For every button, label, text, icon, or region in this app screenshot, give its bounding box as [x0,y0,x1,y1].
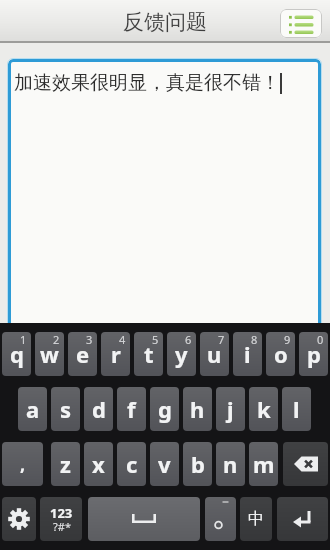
button[interactable]: r [101,332,130,376]
button[interactable]: p [299,332,328,376]
button[interactable]: z [51,442,80,486]
staticText: h [190,394,205,424]
staticText: ?#* [53,519,71,534]
staticText: 中 [248,509,264,529]
staticText: 3 [86,332,93,347]
staticText: e [76,339,90,369]
staticText: d [92,394,106,424]
button[interactable]: k [249,387,278,431]
button[interactable]: 123 [40,497,82,541]
button[interactable] [280,9,322,38]
staticText: c [126,449,138,479]
staticText: l [293,394,300,424]
staticText: 反馈问题 [123,9,207,35]
button[interactable]: b [183,442,212,486]
staticText: u [207,339,222,369]
staticText: 加速效果很明显，真是很不错！ [14,71,280,95]
button[interactable]: e [68,332,97,376]
staticText: v [158,449,171,479]
staticText: f [127,394,136,424]
staticText: j [227,394,234,424]
staticText: 1 [20,332,27,347]
button[interactable] [205,497,236,541]
staticText: g [158,394,172,424]
staticText: k [257,394,271,424]
button[interactable]: d [84,387,113,431]
staticText: w [40,339,59,369]
staticText: 0 [317,332,324,347]
staticText: 9 [284,332,291,347]
button[interactable]: 中 [240,497,272,541]
staticText: 123 [50,504,73,522]
staticText: r [111,339,121,369]
button[interactable]: w [35,332,64,376]
button[interactable]: h [183,387,212,431]
button[interactable]: q [2,332,31,376]
staticText: a [26,394,40,424]
button[interactable]: x [84,442,113,486]
button[interactable]: c [117,442,146,486]
staticText: y [175,339,188,369]
staticText: o [274,339,288,369]
staticText: 5 [152,332,159,347]
button[interactable]: i [233,332,262,376]
staticText: 2 [53,332,60,347]
button[interactable]: f [117,387,146,431]
button[interactable]: t [134,332,163,376]
button[interactable] [283,442,328,486]
staticText: 7 [218,332,225,347]
button[interactable]: , [2,442,43,486]
staticText: s [60,394,72,424]
button[interactable]: j [216,387,245,431]
staticText: n [223,449,238,479]
button[interactable]: a [18,387,47,431]
button[interactable]: o [266,332,295,376]
button[interactable]: y [167,332,196,376]
button[interactable] [277,497,328,541]
staticText: m [253,449,275,479]
button[interactable]: n [216,442,245,486]
staticText: z [60,449,71,479]
staticText: p [307,339,321,369]
staticText: 8 [251,332,258,347]
staticText: , [20,452,26,477]
button[interactable]: 加速效果很明显，真是很不错！ [8,59,321,323]
staticText: q [10,339,24,369]
staticText: t [144,339,154,369]
button[interactable]: s [51,387,80,431]
button[interactable]: m [249,442,278,486]
button[interactable] [88,497,200,541]
staticText: x [92,449,105,479]
staticText: b [191,449,205,479]
button[interactable]: l [282,387,311,431]
button[interactable]: v [150,442,179,486]
staticText: i [244,339,251,369]
button[interactable]: g [150,387,179,431]
button[interactable] [2,497,36,541]
button[interactable]: u [200,332,229,376]
staticText: 6 [185,332,192,347]
staticText: 4 [119,332,126,347]
